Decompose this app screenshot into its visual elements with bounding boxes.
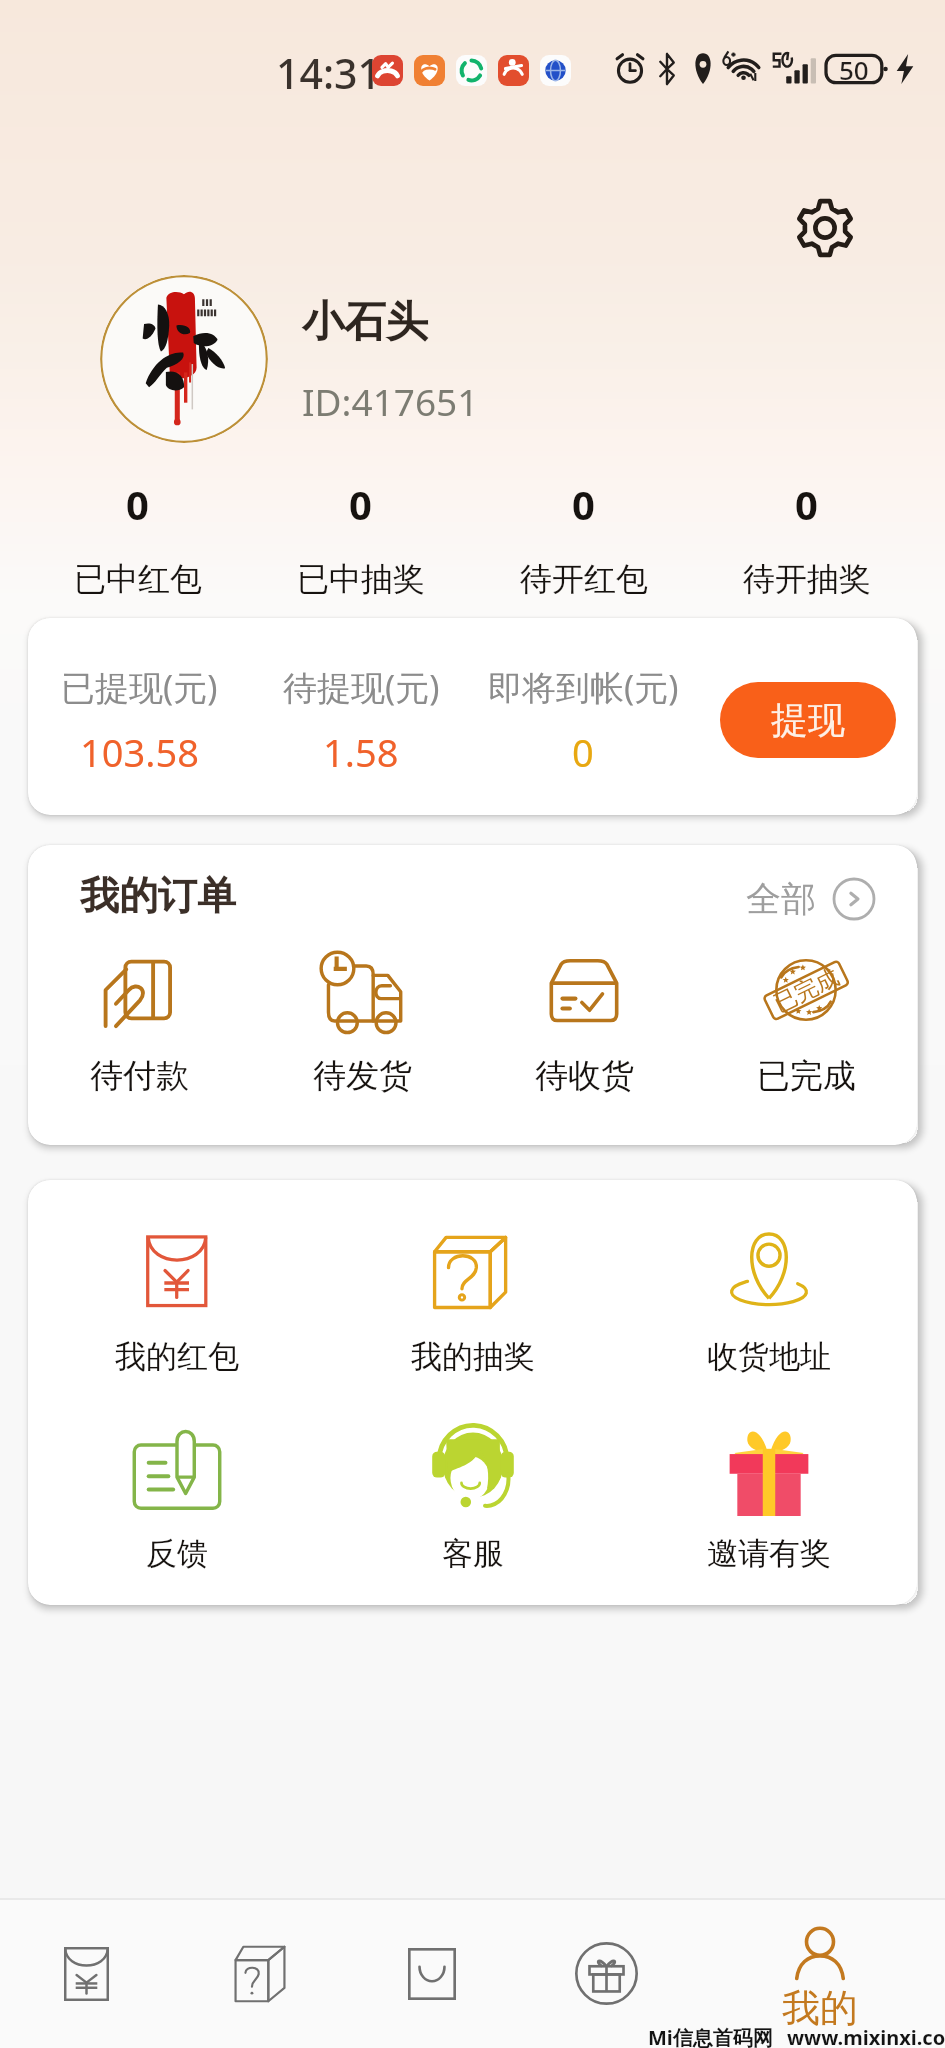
button[interactable]: 收货地址 (621, 1223, 917, 1376)
staticText: www.mixinxi.com (787, 2024, 945, 2048)
button[interactable]: 0 (26, 477, 249, 599)
staticText: ID:417651 (302, 376, 479, 426)
button[interactable]: 商城 (386, 1922, 478, 2026)
button[interactable]: 反馈 (28, 1420, 325, 1573)
staticText: 已完成 (757, 1055, 856, 1097)
staticText: 待开抽奖 (743, 559, 871, 599)
staticText: 0 (349, 477, 372, 531)
button[interactable]: 已提现(元) (28, 664, 250, 778)
staticText: 已中红包 (74, 559, 202, 599)
staticText: 我的红包 (115, 1337, 239, 1376)
staticText: 待付款 (90, 1055, 189, 1097)
staticText: 邀请有奖 (707, 1534, 831, 1573)
button[interactable]: 盲盒 (212, 1919, 308, 2029)
staticText: 反馈 (146, 1534, 208, 1573)
staticText: 已提现(元) (61, 664, 218, 710)
button[interactable]: 待收货 (473, 947, 695, 1097)
button[interactable]: 提现 (720, 682, 896, 758)
staticText: 14:31 (276, 45, 381, 101)
button[interactable]: 0 (249, 477, 472, 599)
staticText: 小石头 (302, 296, 428, 349)
button[interactable]: 待付款 (28, 947, 251, 1097)
staticText: 0 (572, 726, 594, 778)
staticText: 我的订单 (80, 871, 236, 920)
button[interactable]: 已完成 (695, 947, 917, 1097)
staticText: 待收货 (535, 1055, 634, 1097)
staticText: 收货地址 (707, 1337, 831, 1376)
staticText: 1.58 (323, 726, 399, 778)
button[interactable]: 我的 (772, 1927, 868, 2032)
button[interactable]: 福利 (553, 1916, 660, 2031)
button[interactable]: 待提现(元) (250, 664, 472, 778)
staticText: 已中抽奖 (297, 559, 425, 599)
staticText: 0 (126, 477, 149, 531)
staticText: 0 (572, 477, 595, 531)
button[interactable]: 0 (472, 477, 695, 599)
staticText: 我的 (782, 1984, 858, 2032)
button[interactable]: 即将到帐(元) (472, 664, 694, 778)
staticText: 待开红包 (520, 559, 648, 599)
staticText: 全部 (746, 877, 816, 921)
staticText: 即将到帐(元) (488, 664, 679, 710)
staticText: 已完成 (769, 962, 844, 1019)
staticText: 0 (795, 477, 818, 531)
button[interactable]: 客服 (325, 1420, 621, 1573)
button[interactable]: 红包 (42, 1921, 131, 2027)
staticText: 客服 (442, 1534, 504, 1573)
button[interactable]: 待发货 (251, 947, 473, 1097)
button[interactable]: 0 (695, 477, 918, 599)
staticText: 待提现(元) (283, 664, 440, 710)
button[interactable]: 邀请有奖 (621, 1420, 917, 1573)
staticText: 待发货 (313, 1055, 412, 1097)
staticText: 提现 (771, 697, 845, 744)
staticText: 103.58 (80, 726, 199, 778)
button[interactable]: Settings (794, 197, 856, 259)
button[interactable]: 我的抽奖 (325, 1223, 621, 1376)
staticText: Mi信息首码网 (648, 2024, 773, 2048)
button[interactable]: 我的红包 (28, 1223, 325, 1376)
button[interactable]: 全部 (746, 877, 876, 921)
staticText: 50 (839, 52, 869, 87)
staticText: 我的抽奖 (411, 1337, 535, 1376)
button[interactable]: Avatar (100, 275, 268, 443)
